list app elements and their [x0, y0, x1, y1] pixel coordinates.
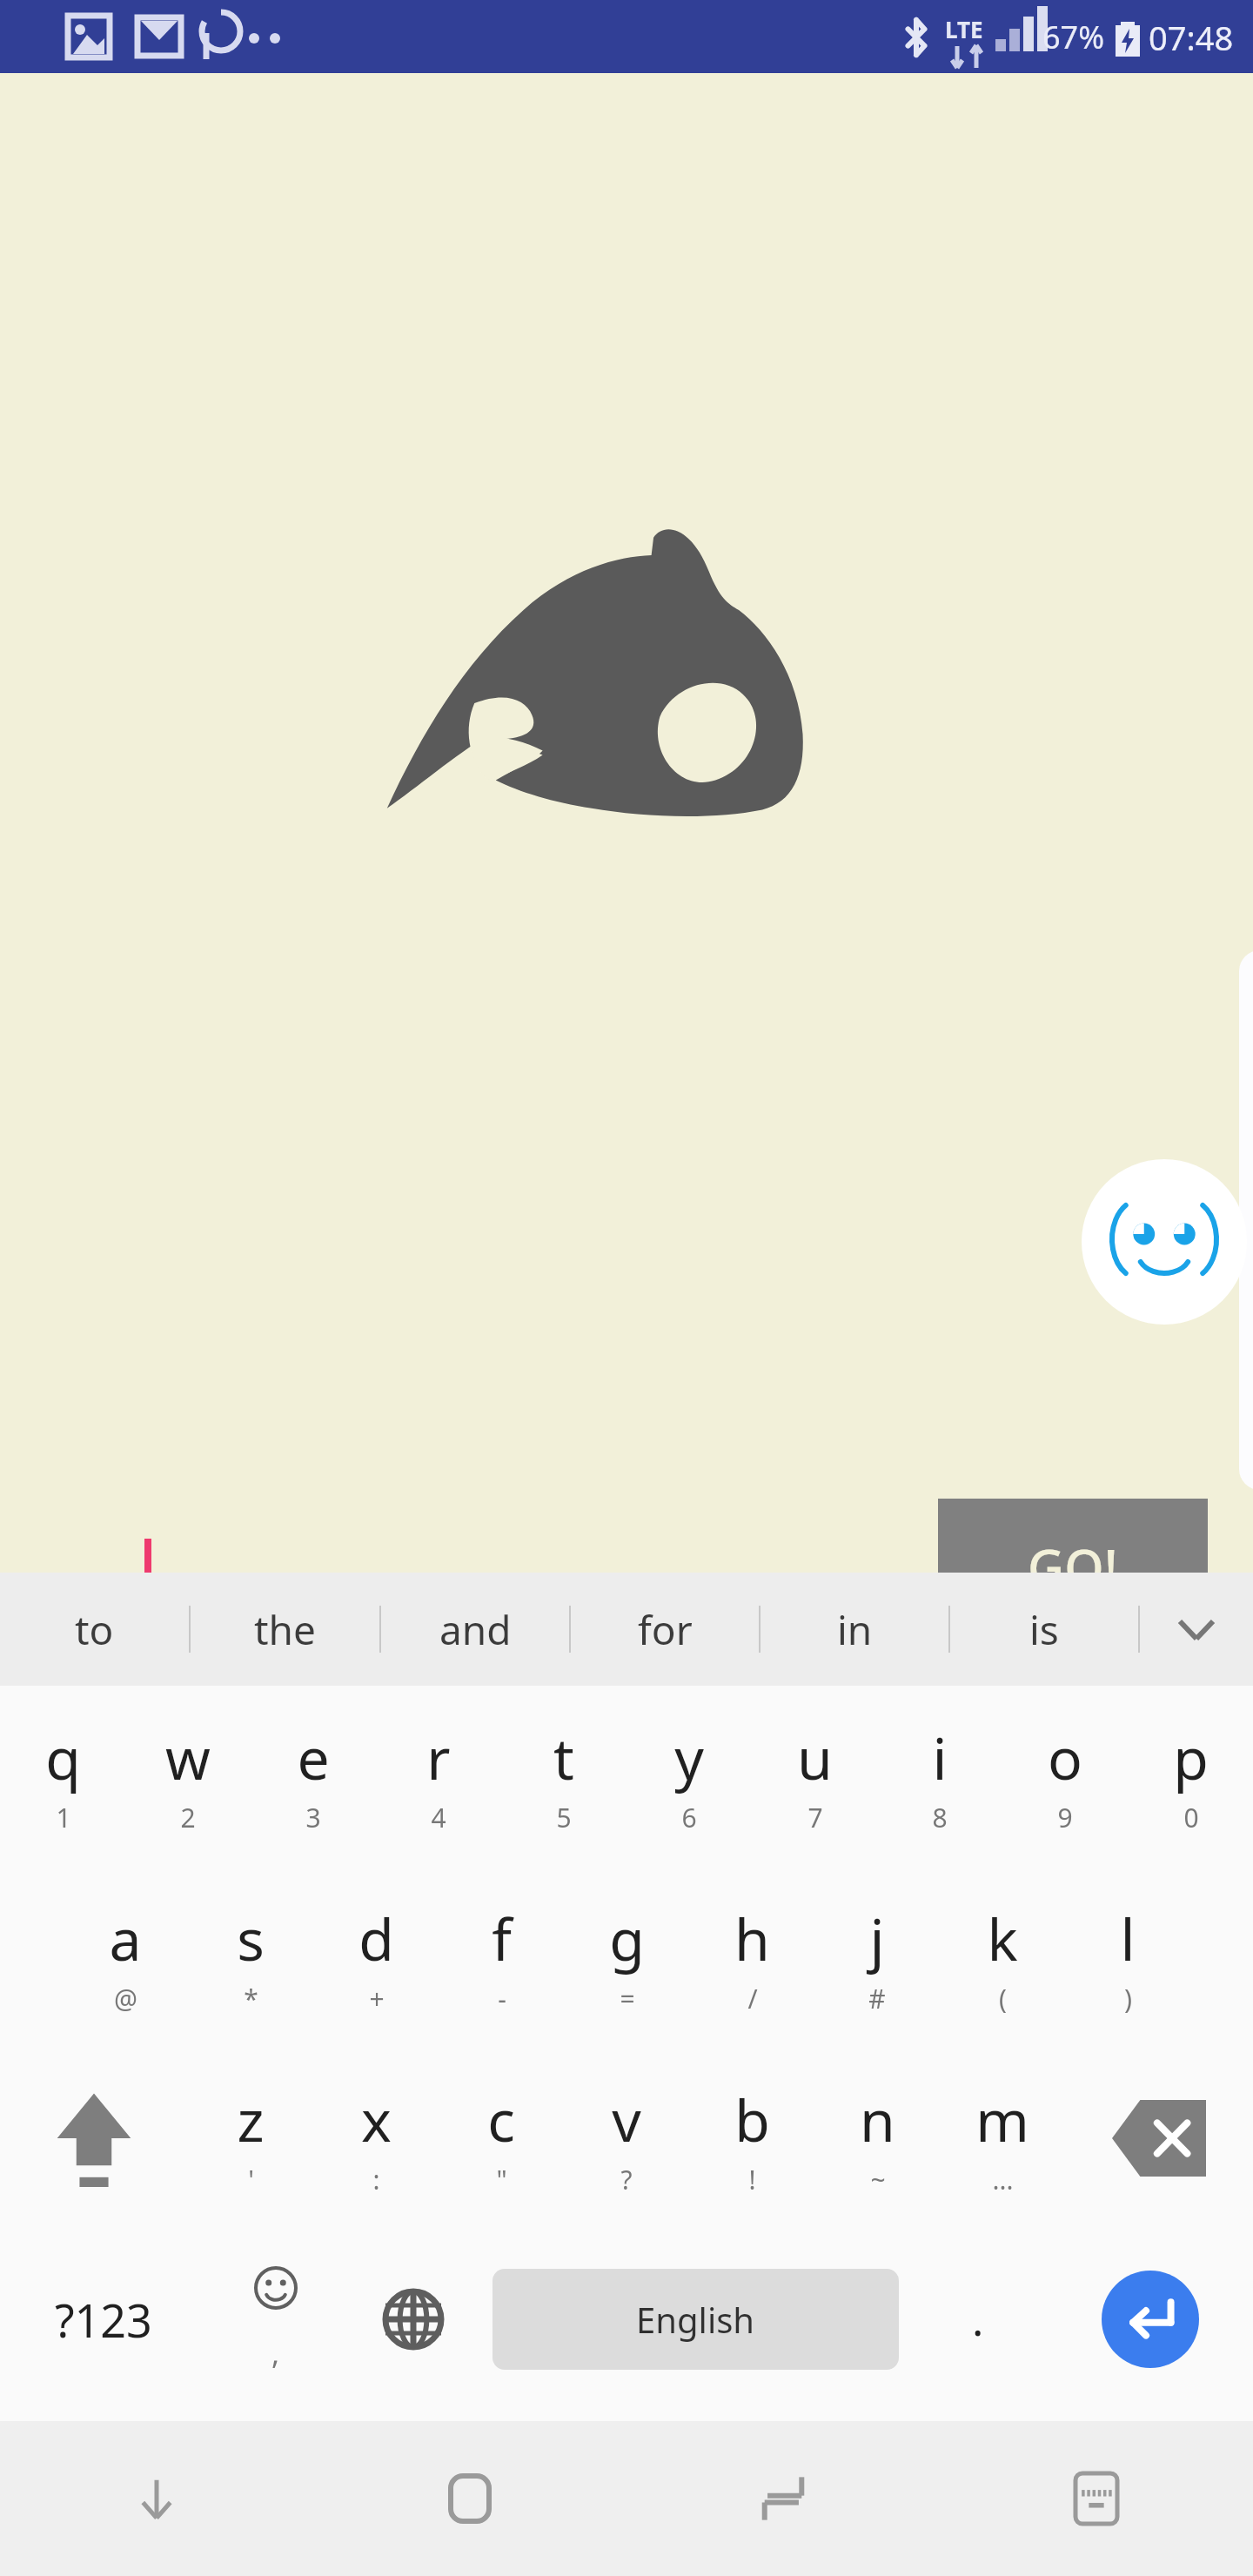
staticText: 5	[556, 1800, 572, 1835]
staticText: 3	[305, 1800, 321, 1835]
button[interactable]: Emoji	[207, 2229, 345, 2410]
button[interactable]: English	[492, 2269, 899, 2370]
button[interactable]: Backspace	[1065, 2048, 1253, 2229]
staticText: h	[734, 1899, 770, 1977]
button[interactable]: for	[571, 1573, 759, 1686]
button[interactable]: a	[63, 1867, 188, 2048]
button[interactable]: and	[381, 1573, 569, 1686]
staticText: 67%	[1042, 16, 1105, 58]
staticText: LTE	[945, 14, 983, 44]
staticText: 0	[1183, 1800, 1199, 1835]
staticText: k	[987, 1899, 1018, 1977]
button[interactable]: is	[950, 1573, 1138, 1686]
staticText: q	[45, 1718, 81, 1796]
button[interactable]: o	[1002, 1686, 1128, 1867]
button[interactable]: j	[814, 1867, 940, 2048]
staticText: p	[1173, 1718, 1209, 1796]
button[interactable]: c	[439, 2048, 564, 2229]
button[interactable]: w	[125, 1686, 251, 1867]
staticText: ...	[992, 2162, 1014, 2197]
button[interactable]: r	[376, 1686, 501, 1867]
staticText: 1	[56, 1800, 71, 1835]
button[interactable]: Enter	[1102, 2271, 1199, 2368]
staticText: r	[426, 1718, 451, 1796]
staticText: for	[638, 1602, 693, 1657]
button[interactable]: z	[188, 2048, 313, 2229]
button[interactable]: b	[689, 2048, 814, 2229]
staticText: ?	[620, 2162, 633, 2197]
button[interactable]: x	[313, 2048, 439, 2229]
staticText: (	[999, 1981, 1007, 2016]
staticText: w	[165, 1718, 211, 1796]
staticText: "	[496, 2162, 507, 2197]
button[interactable]: More suggestions	[1140, 1573, 1253, 1686]
staticText: 8	[932, 1800, 948, 1835]
staticText: z	[237, 2080, 265, 2158]
button[interactable]: GO!	[938, 1499, 1208, 1634]
staticText: j	[869, 1899, 885, 1977]
button[interactable]: Shift	[0, 2048, 188, 2229]
staticText: s	[237, 1899, 265, 1977]
button[interactable]: i	[877, 1686, 1002, 1867]
staticText: u	[797, 1718, 833, 1796]
staticText: 9	[1057, 1800, 1073, 1835]
staticText: f	[492, 1899, 512, 1977]
staticText: x	[361, 2080, 392, 2158]
staticText: y	[674, 1718, 704, 1796]
staticText: g	[609, 1899, 645, 1977]
button[interactable]: Recent apps	[626, 2421, 940, 2576]
button[interactable]: Hide keyboard	[0, 2421, 313, 2576]
button[interactable]: Home	[313, 2421, 626, 2576]
staticText: English	[636, 2296, 755, 2343]
staticText: 2	[180, 1800, 196, 1835]
staticText: 6	[681, 1800, 697, 1835]
staticText: d	[358, 1899, 394, 1977]
staticText: #	[868, 1981, 886, 2016]
button[interactable]: in	[761, 1573, 948, 1686]
staticText: =	[620, 1981, 635, 2016]
button[interactable]: ?123	[0, 2229, 207, 2410]
staticText: :	[372, 2162, 380, 2197]
button[interactable]: the	[191, 1573, 379, 1686]
button[interactable]: m	[940, 2048, 1065, 2229]
staticText: m	[975, 2080, 1029, 2158]
staticText: a	[109, 1899, 142, 1977]
button[interactable]: q	[0, 1686, 125, 1867]
staticText: +	[369, 1981, 385, 2016]
staticText: is	[1029, 1602, 1059, 1657]
staticText: v	[612, 2080, 641, 2158]
staticText: in	[837, 1602, 873, 1657]
button[interactable]: s	[188, 1867, 313, 2048]
button[interactable]: Keyboard settings	[940, 2421, 1253, 2576]
button[interactable]: y	[626, 1686, 752, 1867]
button[interactable]: u	[752, 1686, 877, 1867]
button[interactable]: Emoticon	[1082, 1159, 1247, 1325]
button[interactable]: f	[439, 1867, 564, 2048]
button[interactable]: g	[564, 1867, 689, 2048]
staticText: o	[1048, 1718, 1082, 1796]
staticText: !	[748, 2162, 756, 2197]
button[interactable]: v	[564, 2048, 689, 2229]
button[interactable]: e	[251, 1686, 376, 1867]
button[interactable]: d	[313, 1867, 439, 2048]
button[interactable]: h	[689, 1867, 814, 2048]
staticText: 07:48	[1149, 15, 1234, 60]
staticText: /	[747, 1981, 758, 2016]
button[interactable]: k	[940, 1867, 1065, 2048]
staticText: GO!	[1028, 1533, 1118, 1601]
staticText: i	[932, 1718, 948, 1796]
button[interactable]: to	[0, 1573, 189, 1686]
staticText: c	[487, 2080, 515, 2158]
button[interactable]: Change language	[345, 2229, 482, 2410]
button[interactable]: l	[1065, 1867, 1190, 2048]
button[interactable]: n	[814, 2048, 940, 2229]
staticText: l	[1120, 1899, 1136, 1977]
staticText: -	[498, 1981, 506, 2016]
button[interactable]: .	[909, 2229, 1047, 2410]
staticText: n	[860, 2080, 895, 2158]
staticText: *	[244, 1981, 258, 2016]
button[interactable]: p	[1128, 1686, 1253, 1867]
staticText: e	[297, 1718, 330, 1796]
staticText: .	[972, 2290, 984, 2349]
button[interactable]: t	[501, 1686, 626, 1867]
